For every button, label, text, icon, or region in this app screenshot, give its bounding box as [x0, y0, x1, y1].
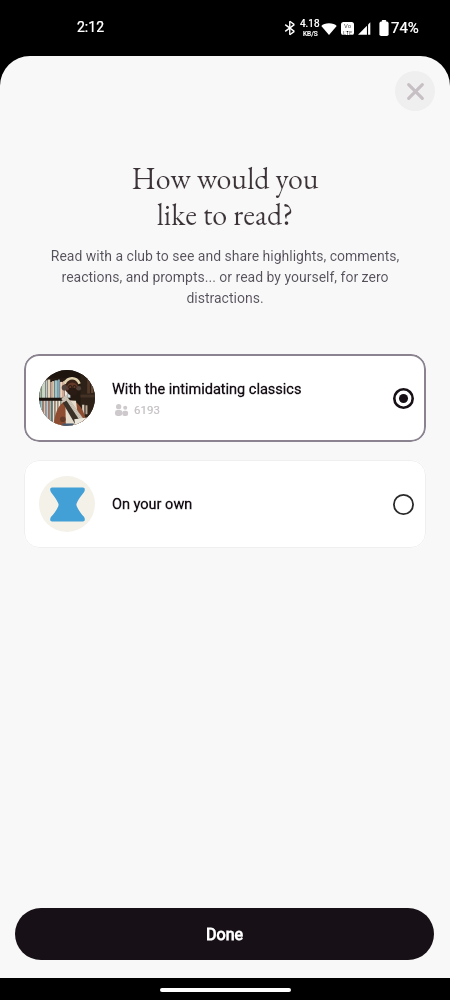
staticText: How would you like to read?	[0, 159, 450, 234]
staticText: KB/S	[303, 30, 318, 38]
button[interactable]: On your own	[24, 460, 426, 548]
staticText: 4.18	[300, 18, 320, 30]
staticText: Vo	[344, 22, 352, 29]
button[interactable]: With the intimidating classics	[24, 354, 426, 442]
staticText: Read with a club to see and share highli…	[48, 248, 402, 306]
staticText: Done	[206, 925, 243, 944]
staticText: On your own	[112, 496, 193, 513]
staticText: LTE	[343, 29, 353, 35]
staticText: 2:12	[77, 19, 104, 35]
staticText: With the intimidating classics	[112, 381, 302, 398]
button[interactable]: Done	[15, 908, 434, 960]
staticText: 6193	[134, 403, 160, 416]
staticText: 74%	[391, 19, 419, 37]
button[interactable]: Close	[395, 71, 435, 111]
